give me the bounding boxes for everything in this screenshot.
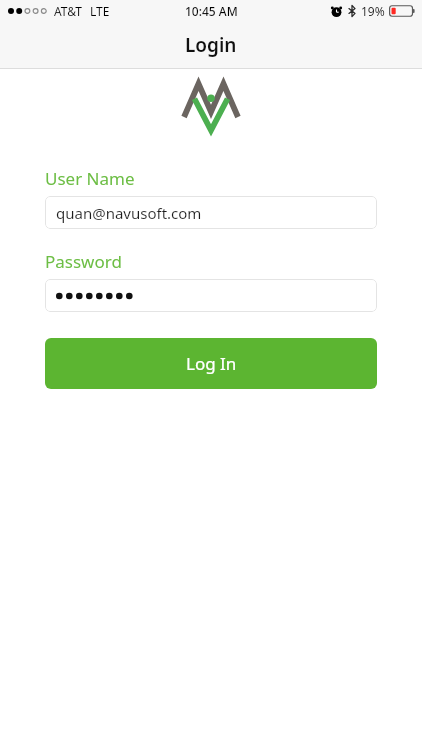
button[interactable]: Log In — [45, 338, 377, 389]
staticText: Password — [45, 250, 122, 273]
staticText: LTE — [90, 3, 110, 19]
button[interactable] — [45, 279, 377, 312]
staticText: Login — [185, 32, 237, 58]
staticText: AT&T — [54, 3, 82, 19]
staticText: 10:45 AM — [185, 3, 238, 19]
staticText: quan@navusoft.com — [56, 203, 202, 223]
staticText: User Name — [45, 167, 135, 190]
button[interactable]: quan@navusoft.com — [45, 196, 377, 229]
staticText: 19% — [361, 3, 385, 19]
staticText: Log In — [186, 352, 237, 375]
